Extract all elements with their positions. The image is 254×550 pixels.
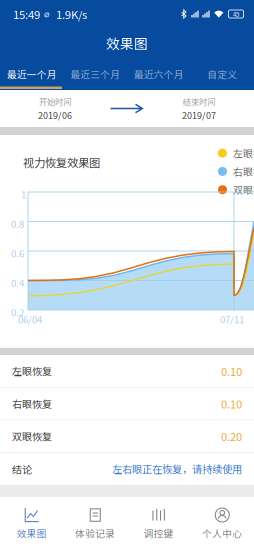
button[interactable]: 效果图 [0,497,63,550]
staticText: 0.10 [221,395,242,412]
staticText: 右眼恢复 [12,396,52,411]
staticText: 07/11 [220,312,244,326]
staticText: 调控键 [144,526,174,540]
staticText: 左右眼正在恢复，请持续使用 [112,461,242,476]
staticText: 体验记录 [75,526,115,540]
button[interactable]: 自定义 [190,59,254,89]
staticText: 双眼视 [233,183,254,197]
button[interactable]: 效果图 [106,28,148,58]
button[interactable]: 左眼恢复 [0,355,254,387]
staticText: 最近六个月 [134,67,184,81]
button[interactable]: 结束时间 [144,90,254,127]
staticText: 0.2 [11,305,24,319]
staticText: 双眼恢复 [12,429,52,443]
staticText: 1 [21,187,26,201]
staticText: 0.20 [221,428,242,444]
staticText: 15:49 [13,6,40,22]
staticText: 右眼视 [233,164,254,179]
staticText: 最近三个月 [70,67,120,81]
staticText: 06/04 [18,312,42,326]
staticText: 效果图 [106,33,148,53]
button[interactable]: 体验记录 [63,497,127,550]
staticText: 结束时间 [183,95,215,108]
staticText: 0.8 [11,216,24,230]
staticText: 2019/07 [182,109,216,121]
button[interactable]: 双眼恢复 [0,420,254,452]
staticText: 45 [233,10,239,18]
staticText: 左眼视 [233,146,254,160]
staticText: 自定义 [207,67,237,81]
button[interactable]: 调控键 [127,497,190,550]
button[interactable]: 最近六个月 [127,59,190,89]
staticText: 1.9K/s [56,6,87,22]
staticText: 0.6 [11,246,24,260]
staticText: 效果图 [17,526,47,540]
staticText: 结论 [12,462,32,476]
staticText: 0.10 [221,363,242,379]
button[interactable]: 右眼恢复 [0,388,254,420]
staticText: 2019/06 [38,109,72,121]
button[interactable]: 开始时间 [0,90,110,127]
staticText: 0.4 [11,275,24,289]
button[interactable]: 个人中心 [190,497,254,550]
staticText: 最近一个月 [7,67,57,81]
button[interactable]: 最近一个月 [0,59,63,89]
button[interactable]: 结论 [0,453,254,485]
staticText: 个人中心 [202,526,242,540]
staticText: 视力恢复效果图 [23,154,100,170]
button[interactable]: 最近三个月 [63,59,127,89]
staticText: 开始时间 [39,95,71,108]
staticText: ⌀ [44,9,50,19]
staticText: 左眼恢复 [12,364,52,378]
